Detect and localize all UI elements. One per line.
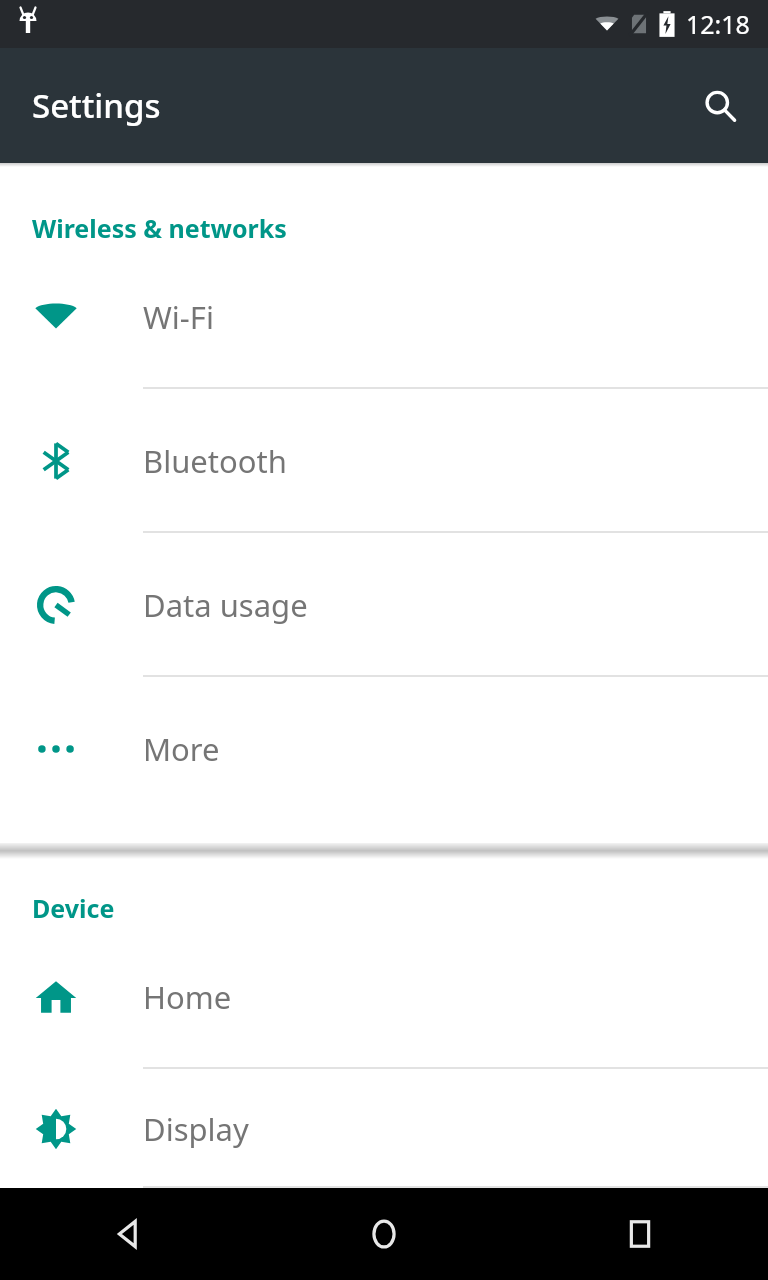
staticText: Settings [32,83,161,128]
staticText: Wireless & networks [32,211,287,245]
staticText: Data usage [143,584,308,626]
button[interactable]: Recents [512,1188,768,1280]
staticText: Device [32,891,115,925]
button[interactable]: Data usage [0,533,768,677]
button[interactable]: Display [0,1069,768,1188]
button[interactable]: Wi-Fi [0,245,768,389]
button[interactable]: Bluetooth [0,389,768,533]
staticText: Wi-Fi [143,296,214,338]
staticText: More [143,728,220,770]
staticText: Home [143,976,232,1018]
button[interactable]: Search [692,78,748,134]
button[interactable]: Home [0,925,768,1069]
button[interactable]: Back [0,1188,256,1280]
button[interactable]: More [0,677,768,821]
staticText: Bluetooth [143,440,287,482]
staticText: 12:18 [686,7,750,41]
staticText: Display [143,1108,249,1150]
button[interactable]: Home [256,1188,512,1280]
